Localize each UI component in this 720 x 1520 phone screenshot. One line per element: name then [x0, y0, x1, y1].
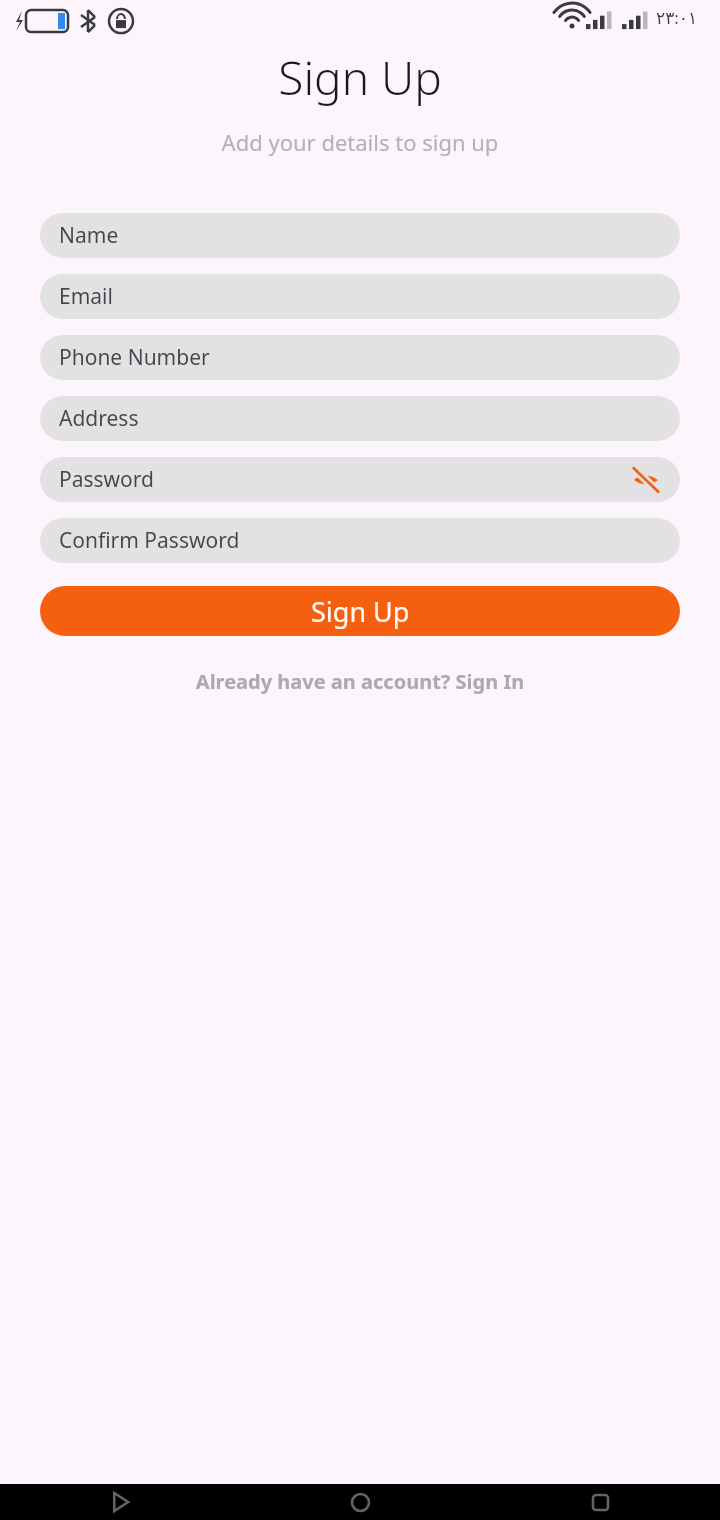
staticText: Sign Up	[311, 593, 410, 630]
staticText: Password	[59, 465, 154, 494]
button[interactable]: Email	[40, 274, 680, 319]
button[interactable]: Phone Number	[40, 335, 680, 380]
button[interactable]: Home	[338, 1484, 382, 1520]
button[interactable]: Show password	[630, 464, 662, 496]
staticText: Address	[59, 404, 139, 433]
staticText: Name	[59, 221, 119, 250]
button[interactable]: Confirm Password	[40, 518, 680, 563]
staticText: Confirm Password	[59, 526, 240, 555]
staticText: Email	[59, 282, 113, 311]
button[interactable]: Password	[40, 457, 680, 502]
staticText: Phone Number	[59, 343, 210, 372]
staticText: Sign Up	[0, 46, 720, 109]
button[interactable]: Already have an account? Sign In	[0, 660, 720, 703]
staticText: ٢٣:٠١	[656, 6, 698, 29]
button[interactable]: Back	[98, 1484, 142, 1520]
button[interactable]: Sign Up	[40, 586, 680, 636]
button[interactable]: Address	[40, 396, 680, 441]
button[interactable]: Recent apps	[578, 1484, 622, 1520]
staticText: Add your details to sign up	[0, 127, 720, 157]
button[interactable]: Name	[40, 213, 680, 258]
